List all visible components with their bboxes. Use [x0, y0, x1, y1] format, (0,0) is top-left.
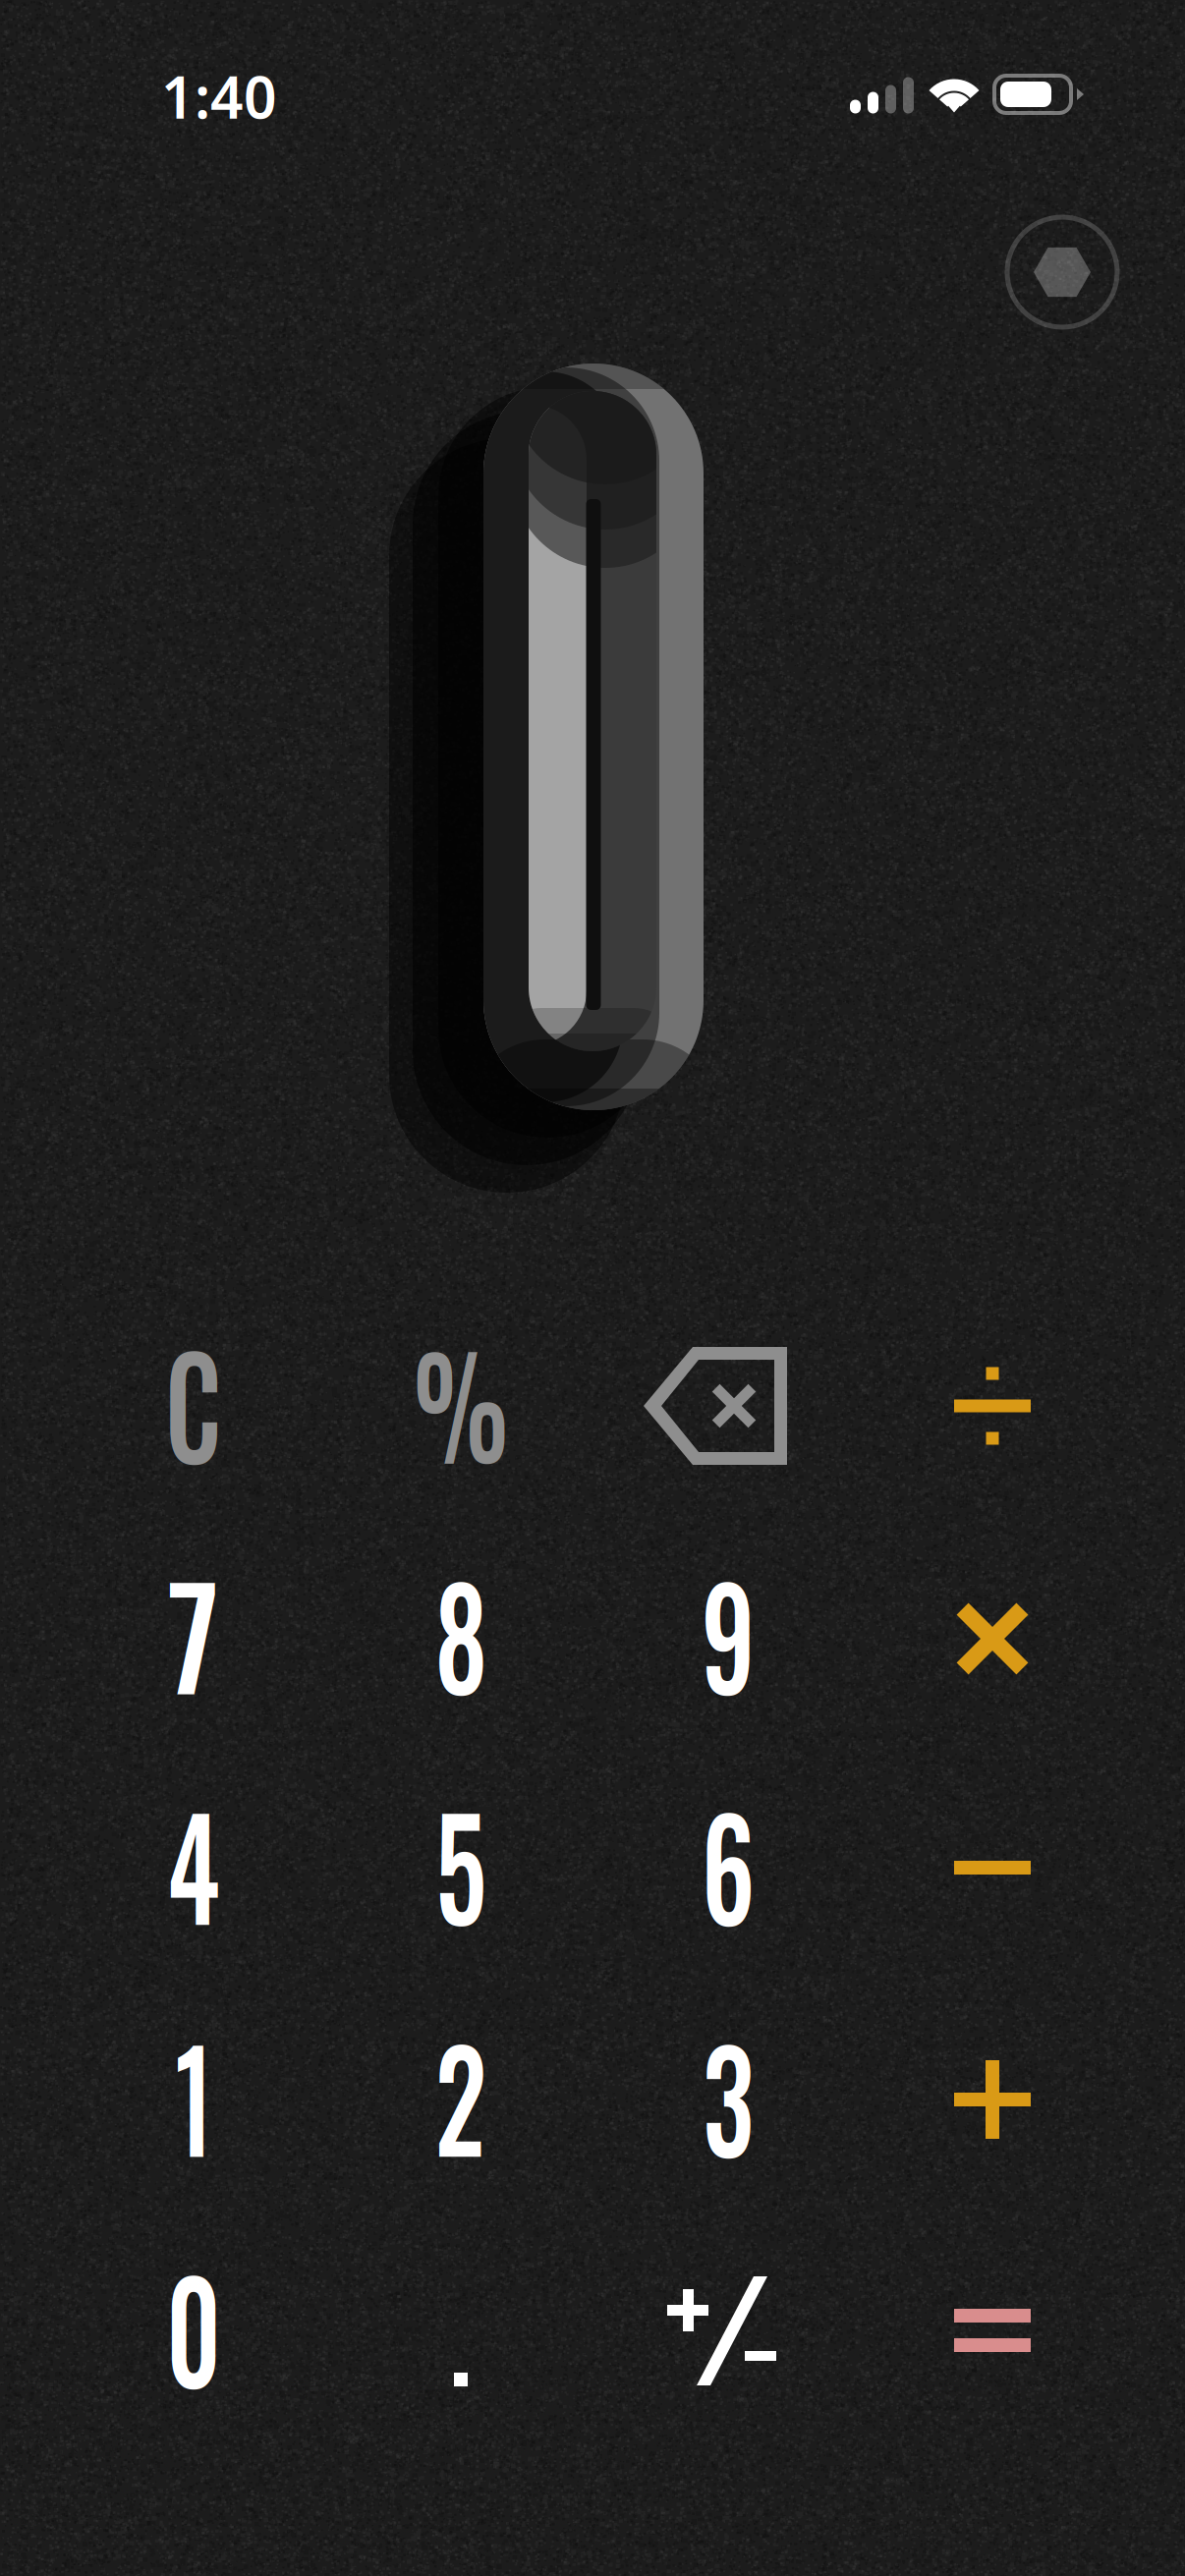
- button[interactable]: Six: [605, 1764, 851, 1971]
- staticText: 3: [694, 1993, 762, 2197]
- button[interactable]: Two: [338, 1996, 584, 2203]
- button[interactable]: Divide: [870, 1303, 1115, 1509]
- button[interactable]: Plus: [870, 1996, 1115, 2203]
- button[interactable]: Nine: [605, 1534, 851, 1740]
- button[interactable]: Delete: [605, 1303, 851, 1509]
- staticText: %: [395, 1299, 526, 1503]
- staticText: C: [156, 1299, 231, 1503]
- staticText: 1: [168, 1993, 220, 2197]
- button[interactable]: Multiply: [870, 1534, 1115, 1740]
- staticText: 6: [692, 1761, 764, 1965]
- button[interactable]: Eight: [338, 1534, 584, 1740]
- staticText: 0: [157, 2224, 230, 2427]
- staticText: 1:40: [161, 58, 277, 134]
- button[interactable]: One: [71, 1996, 316, 2203]
- staticText: 2: [426, 1993, 495, 2197]
- button[interactable]: Four: [71, 1764, 316, 1971]
- button[interactable]: Decimal point: [338, 2227, 584, 2434]
- staticText: 5: [427, 1761, 495, 1965]
- button[interactable]: Zero: [71, 2227, 316, 2434]
- button[interactable]: Plus minus: [605, 2227, 851, 2434]
- button[interactable]: Percent: [338, 1303, 584, 1509]
- button[interactable]: Three: [605, 1996, 851, 2203]
- button[interactable]: History: [988, 198, 1136, 346]
- staticText: 4: [159, 1761, 228, 1965]
- button[interactable]: Minus: [870, 1764, 1115, 1971]
- staticText: 9: [692, 1530, 764, 1734]
- button[interactable]: Five: [338, 1764, 584, 1971]
- button[interactable]: Equals: [870, 2227, 1115, 2434]
- button[interactable]: Seven: [71, 1534, 316, 1740]
- button[interactable]: Clear: [71, 1303, 316, 1509]
- staticText: 7: [165, 1530, 222, 1734]
- staticText: 8: [426, 1530, 496, 1734]
